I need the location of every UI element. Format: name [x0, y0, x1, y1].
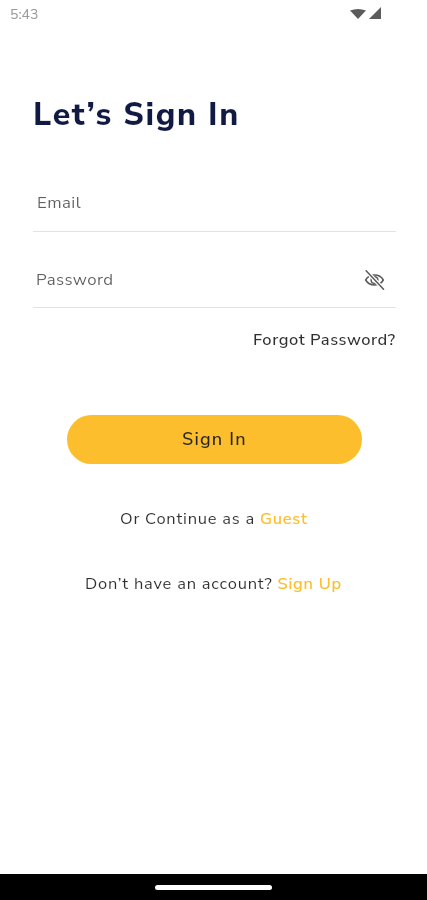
staticText: Password	[36, 268, 114, 291]
button[interactable]: Forgot Password?	[253, 328, 396, 350]
button[interactable]: Don’t have an account? Sign Up	[85, 572, 342, 594]
button[interactable]: Toggle password visibility	[358, 264, 390, 296]
staticText: Or Continue as a Guest	[120, 507, 308, 529]
staticText: 5:43	[10, 5, 39, 24]
staticText: Sign In	[182, 427, 247, 452]
staticText: Forgot Password?	[253, 328, 396, 350]
staticText: Let’s Sign In	[33, 93, 240, 137]
button[interactable]: Or Continue as a Guest	[120, 507, 308, 529]
staticText: Email	[37, 191, 82, 214]
button[interactable]: Sign In	[67, 415, 362, 464]
staticText: Don’t have an account? Sign Up	[85, 572, 342, 594]
